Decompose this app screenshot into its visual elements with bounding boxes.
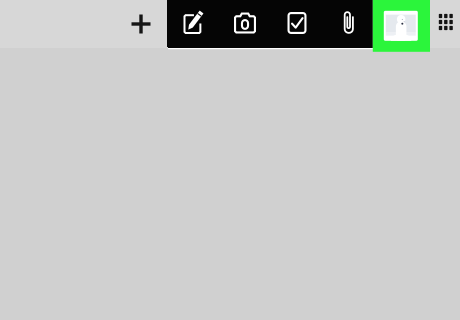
button[interactable]: Compose xyxy=(167,0,219,47)
button[interactable]: Checklist xyxy=(271,0,322,47)
button[interactable]: Apps xyxy=(431,0,460,46)
button[interactable]: Attach xyxy=(326,0,372,46)
button[interactable]: Contact xyxy=(373,0,430,52)
button[interactable]: Add xyxy=(115,0,167,48)
button[interactable]: Camera xyxy=(219,0,271,47)
